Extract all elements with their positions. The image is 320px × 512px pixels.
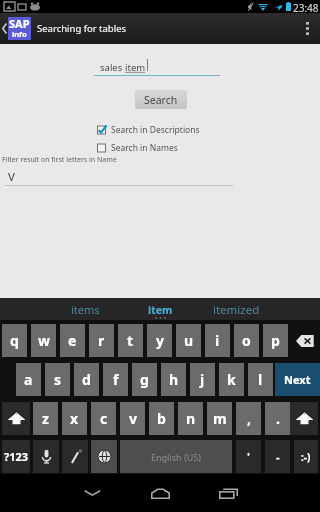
button[interactable]: a bbox=[16, 363, 41, 396]
button[interactable]: Search bbox=[135, 90, 187, 109]
staticText: k bbox=[227, 370, 236, 389]
staticText: y bbox=[156, 331, 164, 350]
button[interactable]: h bbox=[161, 363, 186, 396]
staticText: Searching for tables bbox=[37, 22, 127, 35]
staticText: c bbox=[100, 409, 108, 428]
staticText: z bbox=[42, 409, 49, 428]
button[interactable]: Change language bbox=[91, 440, 117, 473]
staticText: English (US) bbox=[151, 451, 201, 463]
staticText: v bbox=[129, 409, 137, 428]
staticText: o bbox=[242, 331, 251, 350]
button[interactable]: English (US) bbox=[120, 440, 232, 473]
staticText: V bbox=[8, 169, 15, 185]
button[interactable]: Back bbox=[58, 474, 126, 512]
button[interactable]: Next bbox=[275, 363, 320, 396]
staticText: t bbox=[127, 331, 134, 350]
staticText: n bbox=[186, 409, 196, 428]
staticText: , bbox=[247, 409, 251, 428]
button[interactable]: Navigate up bbox=[0, 13, 320, 44]
button[interactable]: g bbox=[132, 363, 157, 396]
button[interactable]: x bbox=[62, 402, 87, 435]
button[interactable]: f bbox=[103, 363, 128, 396]
staticText: Filter result on first letters in Name bbox=[2, 155, 117, 165]
staticText: info bbox=[12, 29, 27, 37]
staticText: u bbox=[184, 331, 194, 350]
staticText: p bbox=[271, 331, 280, 350]
staticText: a bbox=[24, 370, 33, 389]
staticText: j bbox=[200, 370, 205, 389]
staticText: q bbox=[10, 331, 19, 350]
staticText: b bbox=[157, 409, 166, 428]
staticText: r bbox=[98, 331, 105, 350]
staticText: Search in Descriptions bbox=[111, 124, 200, 136]
staticText: Next bbox=[284, 372, 311, 387]
button[interactable]: r bbox=[89, 324, 114, 357]
button[interactable]: u bbox=[176, 324, 201, 357]
button[interactable]: Search in Descriptions bbox=[95, 123, 200, 137]
staticText: - bbox=[276, 449, 280, 464]
button[interactable]: ?123 bbox=[2, 440, 30, 473]
staticText: itemized bbox=[213, 302, 260, 318]
button[interactable]: n bbox=[178, 402, 203, 435]
staticText: e bbox=[68, 331, 77, 350]
button[interactable]: w bbox=[31, 324, 56, 357]
button[interactable]: i bbox=[205, 324, 230, 357]
staticText: ?123 bbox=[4, 449, 29, 464]
staticText: SAP bbox=[9, 16, 30, 31]
button[interactable]: Voice input bbox=[33, 440, 59, 473]
button[interactable]: item bbox=[139, 298, 181, 321]
button[interactable]: :-) bbox=[294, 440, 318, 473]
button[interactable]: ' bbox=[236, 440, 261, 473]
staticText: h bbox=[169, 370, 179, 389]
staticText: ' bbox=[247, 449, 250, 464]
staticText: m bbox=[213, 409, 227, 428]
button[interactable]: b bbox=[149, 402, 174, 435]
staticText: 23:48 bbox=[293, 1, 319, 14]
other: Navigate up bbox=[2, 23, 7, 34]
button[interactable]: z bbox=[33, 402, 58, 435]
staticText: items bbox=[71, 302, 100, 317]
button[interactable]: Delete bbox=[292, 324, 318, 357]
button[interactable]: j bbox=[190, 363, 215, 396]
button[interactable]: Shift bbox=[290, 402, 318, 435]
staticText: . bbox=[276, 409, 280, 428]
staticText: d bbox=[82, 370, 91, 389]
button[interactable]: c bbox=[91, 402, 116, 435]
button[interactable]: o bbox=[234, 324, 259, 357]
button[interactable]: l bbox=[248, 363, 273, 396]
button[interactable]: Shift bbox=[2, 402, 30, 435]
button[interactable]: Recent apps bbox=[194, 474, 262, 512]
staticText: item bbox=[125, 61, 146, 74]
staticText: Search in Names bbox=[111, 142, 178, 154]
button[interactable]: Search in Names bbox=[95, 141, 178, 155]
button[interactable]: d bbox=[74, 363, 99, 396]
button[interactable]: y bbox=[147, 324, 172, 357]
button[interactable]: More options bbox=[294, 13, 320, 44]
button[interactable]: sales bbox=[94, 58, 220, 76]
button[interactable]: , bbox=[236, 402, 261, 435]
button[interactable]: Home bbox=[126, 474, 194, 512]
button[interactable]: . bbox=[265, 402, 290, 435]
button[interactable]: itemized bbox=[181, 298, 291, 321]
button[interactable]: v bbox=[120, 402, 145, 435]
button[interactable]: m bbox=[207, 402, 232, 435]
button[interactable]: - bbox=[265, 440, 290, 473]
staticText: x bbox=[70, 409, 79, 428]
staticText: Search bbox=[144, 93, 178, 107]
staticText: l bbox=[258, 370, 263, 389]
staticText: f bbox=[113, 370, 119, 389]
button[interactable]: e bbox=[60, 324, 85, 357]
staticText: g bbox=[140, 370, 149, 389]
button[interactable]: V bbox=[5, 168, 233, 186]
staticText: w bbox=[38, 331, 50, 350]
button[interactable]: p bbox=[263, 324, 288, 357]
button[interactable]: q bbox=[2, 324, 27, 357]
staticText: item bbox=[148, 303, 173, 317]
button[interactable]: k bbox=[219, 363, 244, 396]
button[interactable]: s bbox=[45, 363, 70, 396]
staticText: i bbox=[215, 331, 220, 350]
button[interactable]: Settings bbox=[62, 440, 88, 473]
staticText: sales bbox=[100, 61, 125, 74]
button[interactable]: t bbox=[118, 324, 143, 357]
button[interactable]: items bbox=[32, 298, 139, 321]
